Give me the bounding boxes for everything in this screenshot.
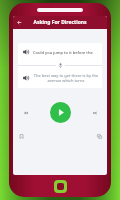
staticText: Asking For Directions — [33, 19, 87, 26]
button[interactable]: Home — [54, 180, 67, 193]
button[interactable]: Record voice — [56, 61, 65, 70]
button[interactable]: Back — [15, 18, 24, 27]
button[interactable]: Play — [50, 102, 71, 123]
staticText: Could you jump to it before the — [33, 50, 93, 55]
button[interactable]: Previous — [20, 107, 31, 118]
button[interactable]: Next — [89, 107, 100, 118]
button[interactable]: Copy — [94, 131, 104, 141]
button[interactable]: Speak question — [21, 47, 31, 57]
staticText: The best way to get there is by the aven… — [33, 73, 99, 83]
button[interactable]: Bookmark — [16, 131, 26, 141]
button[interactable]: Speak question — [18, 43, 102, 88]
button[interactable]: Speak answer — [21, 73, 31, 83]
